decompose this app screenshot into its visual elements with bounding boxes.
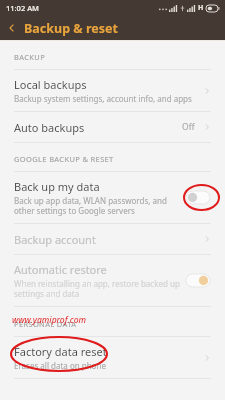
staticText: Backup system settings, account info, an… [14, 93, 192, 104]
staticText: H [198, 3, 204, 13]
staticText: Auto backups [14, 120, 85, 135]
staticText: Backup account [14, 232, 96, 247]
staticText: Erases all data on phone [14, 360, 106, 371]
staticText: www.yamiprof.com [12, 314, 87, 326]
button[interactable]: Local backups [0, 70, 225, 111]
staticText: Back up app data, WLAN passwords, and ot… [14, 195, 180, 216]
button[interactable]: Backup account [0, 224, 225, 254]
staticText: Backup & reset [24, 20, 118, 37]
button[interactable]: Back up my data [0, 172, 225, 223]
button[interactable]: Auto backups [0, 112, 225, 142]
staticText: BACKUP [14, 52, 46, 62]
staticText: Factory data reset [14, 344, 107, 359]
staticText: PERSONAL DATA [14, 319, 77, 329]
staticText: Off [182, 121, 195, 133]
staticText: When reinstalling an app, restore backed… [14, 278, 180, 299]
staticText: 11:02 AM [6, 3, 39, 13]
button[interactable]: Factory data reset [0, 337, 225, 378]
staticText: Automatic restore [14, 262, 107, 277]
button[interactable]: Back [0, 16, 24, 40]
button[interactable]: Switch off [186, 191, 210, 204]
button[interactable]: Automatic restore [0, 255, 225, 306]
button[interactable]: Switch on [186, 274, 210, 287]
staticText: Back up my data [14, 179, 100, 194]
staticText: GOOGLE BACKUP & RESET [14, 154, 114, 164]
staticText: Local backups [14, 77, 87, 92]
